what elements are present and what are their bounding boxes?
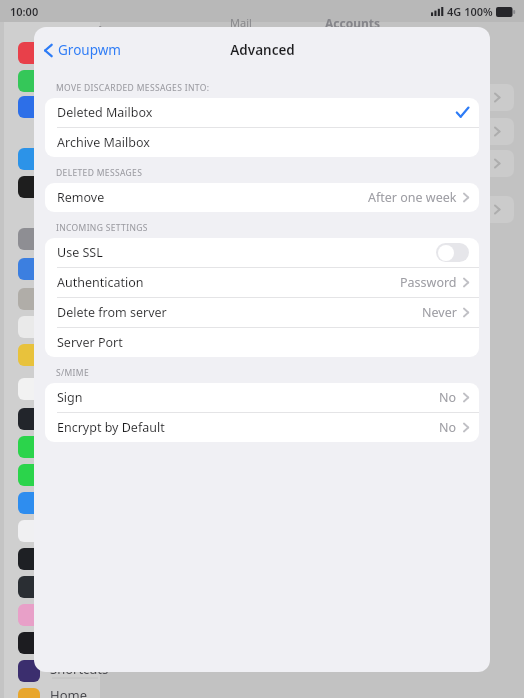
staticText: Accounts bbox=[325, 15, 381, 31]
other: Open bbox=[463, 422, 469, 433]
staticText: After one week bbox=[368, 189, 457, 206]
button[interactable]: Groupwm bbox=[34, 34, 131, 66]
other: Open bbox=[463, 307, 469, 318]
staticText: MOVE DISCARDED MESSAGES INTO: bbox=[56, 82, 210, 94]
button[interactable]: Authentication bbox=[45, 268, 479, 297]
button[interactable]: Sign bbox=[45, 383, 479, 412]
staticText: Use SSL bbox=[57, 244, 103, 261]
button[interactable]: Deleted Mailbox bbox=[45, 98, 479, 127]
staticText: Authentication bbox=[57, 274, 144, 291]
staticText: Sign bbox=[57, 389, 83, 406]
button[interactable]: Delete from server bbox=[45, 298, 479, 327]
button[interactable]: Remove bbox=[45, 183, 479, 212]
staticText: Delete from server bbox=[57, 304, 167, 321]
staticText: DELETED MESSAGES bbox=[56, 167, 143, 179]
other: Open bbox=[463, 392, 469, 403]
button[interactable]: Server Port bbox=[45, 328, 479, 357]
staticText: No bbox=[439, 389, 457, 406]
button[interactable]: Toggle Use SSL bbox=[436, 243, 469, 262]
button[interactable]: Encrypt by Default bbox=[45, 413, 479, 442]
staticText: Remove bbox=[57, 189, 105, 206]
button[interactable]: Archive Mailbox bbox=[45, 128, 479, 157]
staticText: Password bbox=[400, 274, 457, 291]
staticText: Advanced bbox=[230, 41, 295, 59]
staticText: 10:00 bbox=[10, 4, 39, 19]
staticText: Never bbox=[422, 304, 457, 321]
staticText: Settings bbox=[72, 22, 126, 40]
staticText: Encrypt by Default bbox=[57, 419, 165, 436]
staticText: S/MIME bbox=[56, 367, 89, 379]
staticText: No bbox=[439, 419, 457, 436]
other: Open bbox=[463, 277, 469, 288]
staticText: INCOMING SETTINGS bbox=[56, 222, 148, 234]
staticText: Shortcuts bbox=[50, 660, 109, 678]
other: Open bbox=[463, 192, 469, 203]
staticText: Groupwm bbox=[58, 41, 121, 59]
staticText: Home bbox=[50, 686, 87, 698]
staticText: 4G 100% bbox=[447, 4, 493, 19]
staticText: Deleted Mailbox bbox=[57, 104, 153, 121]
staticText: Mail bbox=[230, 15, 252, 30]
staticText: Server Port bbox=[57, 334, 123, 351]
staticText: Archive Mailbox bbox=[57, 134, 150, 151]
button[interactable]: Use SSL bbox=[45, 238, 479, 267]
